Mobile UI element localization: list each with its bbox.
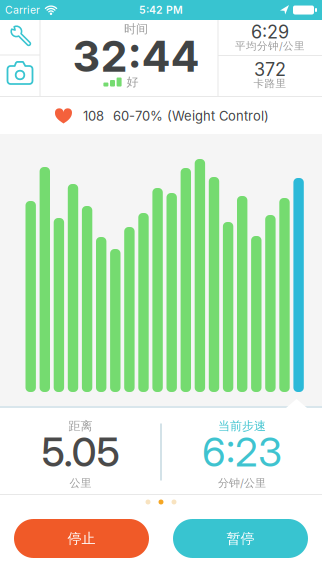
staticText: 平均分钟/公里 [235, 39, 305, 53]
button[interactable]: 暂停 [173, 519, 308, 558]
staticText: 当前步速 [218, 418, 266, 433]
staticText: 暂停 [226, 530, 254, 547]
staticText: 距离 [68, 418, 92, 433]
staticText: 5.05 [41, 428, 119, 476]
staticText: 60-70% (Weight Control) [113, 108, 269, 124]
staticText: 6:23 [202, 428, 282, 476]
button[interactable]: Camera [0, 52, 40, 93]
staticText: 分钟/公里 [218, 476, 266, 490]
button[interactable]: 停止 [14, 519, 149, 558]
staticText: 好 [127, 74, 139, 89]
staticText: 32:44 [72, 30, 199, 82]
staticText: 6:29 [251, 21, 289, 43]
staticText: 时间 [124, 21, 148, 36]
staticText: Carrier [5, 4, 40, 16]
button[interactable]: Settings [0, 17, 40, 52]
staticText: 公里 [69, 476, 91, 490]
staticText: 372 [254, 59, 286, 80]
staticText: 5:42 PM [139, 4, 183, 16]
staticText: 108 [83, 108, 104, 124]
staticText: 卡路里 [253, 77, 286, 90]
staticText: 停止 [67, 530, 95, 547]
